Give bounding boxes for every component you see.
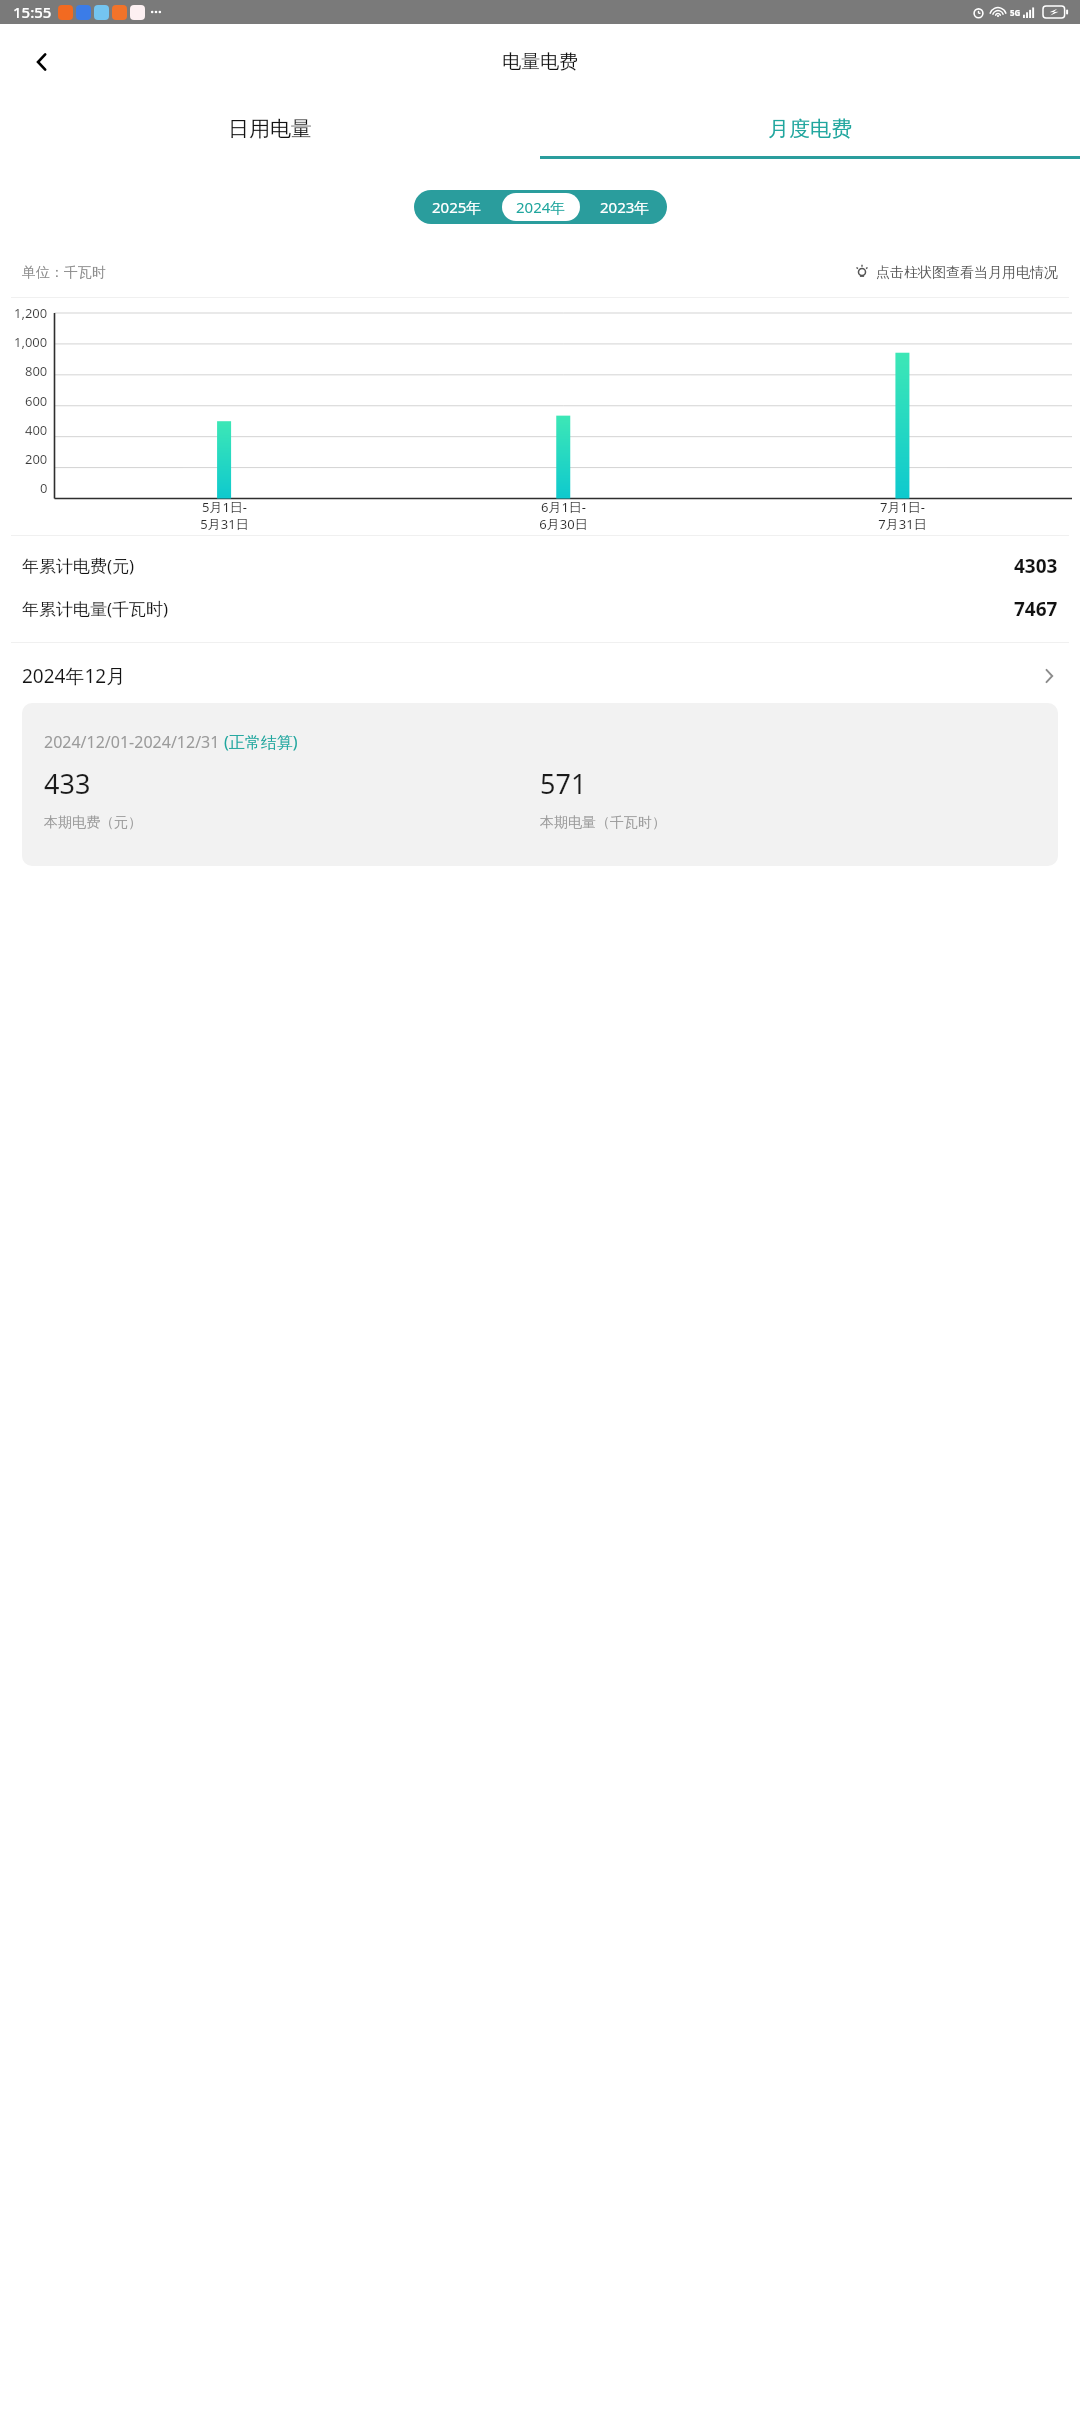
button[interactable]: 7月1日- 7月31日 [733, 498, 1072, 533]
staticText: 日用电量 [228, 116, 312, 142]
staticText: 433 [44, 765, 91, 802]
staticText: (正常结算) [224, 731, 298, 753]
staticText: 2024年 [516, 197, 566, 217]
staticText: 单位：千瓦时 [22, 264, 106, 282]
staticText: 600 [25, 392, 48, 410]
staticText: 0 [40, 479, 48, 497]
button[interactable]: 5月1日- 5月31日 [55, 498, 394, 533]
other: Alarm [972, 6, 985, 19]
staticText: 15:55 [13, 2, 52, 22]
staticText: 7467 [1014, 596, 1058, 622]
other: Wi-Fi [991, 7, 1005, 18]
button[interactable]: 日用电量 [0, 99, 540, 159]
staticText: 2023年 [600, 197, 650, 217]
button[interactable]: 2024年12月 [22, 659, 1058, 693]
button[interactable]: 2023年 [586, 193, 664, 221]
staticText: 1,200 [14, 304, 48, 322]
staticText: 月度电费 [768, 116, 852, 142]
other: More [1040, 667, 1058, 685]
staticText: 电量电费 [502, 50, 578, 74]
staticText: 点击柱状图查看当月用电情况 [876, 264, 1058, 282]
staticText: 年累计电量(千瓦时) [22, 597, 169, 620]
staticText: 400 [25, 421, 48, 439]
staticText: 1,000 [14, 333, 48, 351]
staticText: 571 [540, 765, 587, 802]
button[interactable]: 6月1日- 6月30日 [394, 498, 733, 533]
staticText: 5月1日- 5月31日 [200, 498, 249, 533]
staticText: 2024年12月 [22, 663, 126, 689]
staticText: 5G [1010, 7, 1021, 18]
staticText: 2025年 [432, 197, 482, 217]
staticText: 6月1日- 6月30日 [539, 498, 588, 533]
staticText: 本期电费（元） [44, 814, 142, 832]
staticText: 4303 [1014, 553, 1058, 579]
staticText: 800 [25, 362, 48, 380]
button[interactable]: 月度电费 [540, 99, 1080, 159]
staticText: 2024/12/01-2024/12/31 [44, 731, 224, 753]
other: Battery charging [1043, 6, 1067, 18]
button[interactable]: 2024/12/01-2024/12/31 [22, 703, 1058, 866]
staticText: 年累计电费(元) [22, 554, 135, 577]
staticText: 200 [25, 450, 48, 468]
button[interactable]: Back [18, 38, 66, 86]
button[interactable]: 2025年 [417, 193, 496, 221]
button[interactable]: 2024年 [502, 193, 580, 221]
staticText: 7月1日- 7月31日 [878, 498, 927, 533]
other: Signal [1023, 7, 1036, 18]
staticText: 本期电量（千瓦时） [540, 814, 666, 832]
